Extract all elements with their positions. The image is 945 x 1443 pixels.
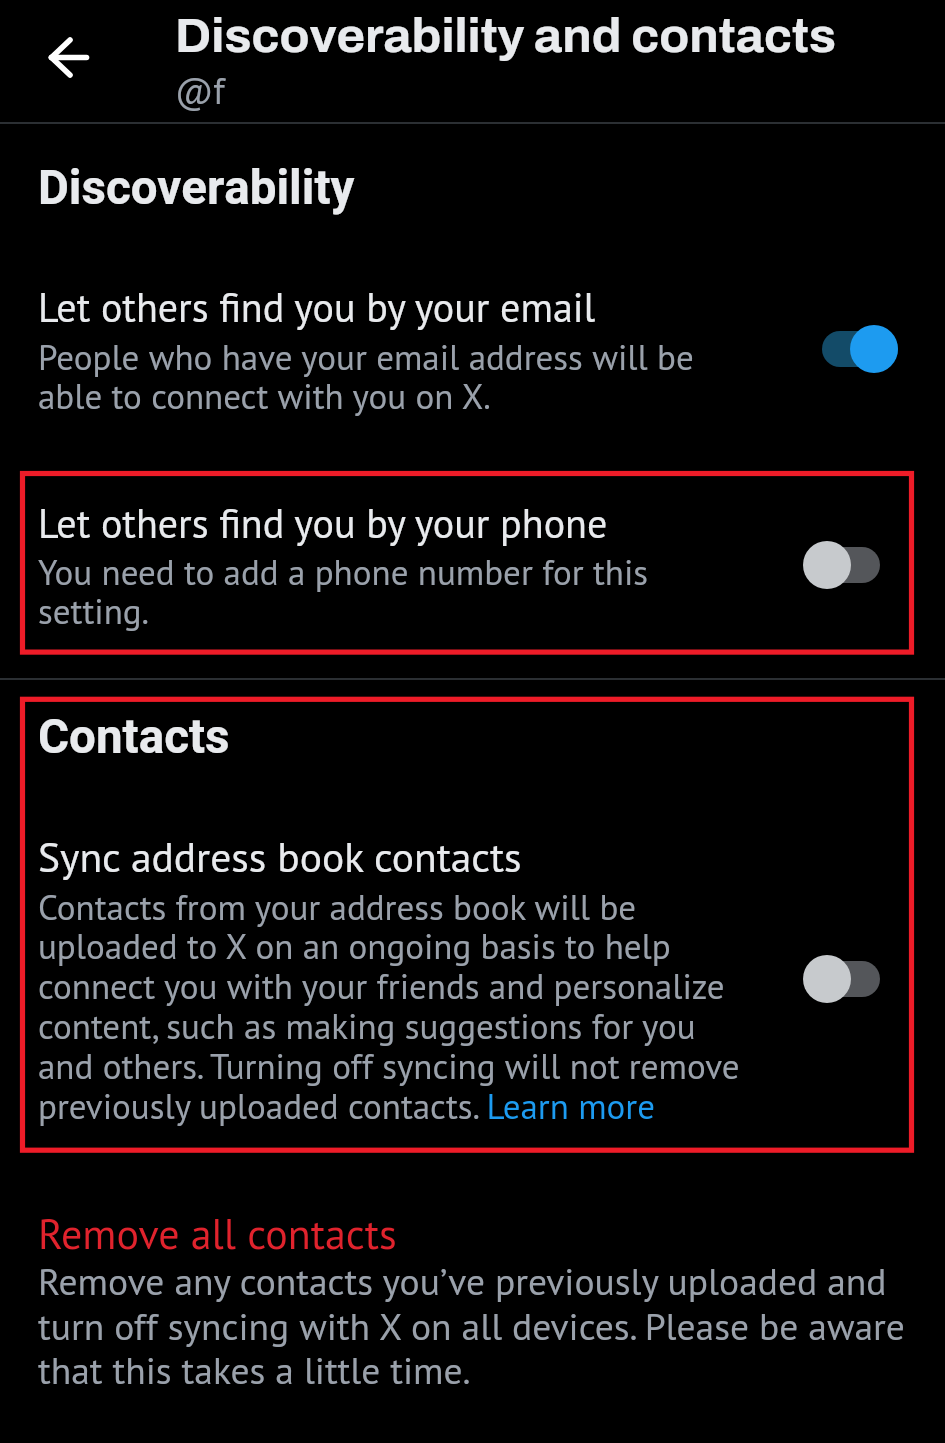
staticText: You need to add a phone number for this …	[38, 549, 754, 634]
staticText: Remove any contacts you’ve previously up…	[38, 1257, 918, 1394]
button[interactable]: Off	[790, 535, 894, 595]
button[interactable]: Off	[790, 949, 894, 1009]
button[interactable]	[0, 810, 945, 1140]
staticText: Let others find you by your phone	[38, 497, 608, 549]
button[interactable]	[0, 474, 945, 654]
button[interactable]: Discoverability and contacts	[175, 9, 837, 62]
staticText: Let others find you by your email	[38, 281, 596, 333]
button[interactable]: Back	[30, 19, 106, 95]
staticText: People who have your email address will …	[38, 334, 754, 419]
staticText: Contacts from your address book will be …	[38, 884, 754, 1129]
staticText: Contacts	[38, 703, 230, 773]
button[interactable]: Let others find you by your email, on	[808, 319, 912, 379]
button[interactable]	[0, 262, 945, 430]
staticText: @f	[175, 67, 225, 114]
staticText: Discoverability	[38, 154, 355, 224]
button[interactable]: Remove all contacts	[38, 1206, 397, 1260]
staticText: Sync address book contacts	[38, 830, 522, 884]
